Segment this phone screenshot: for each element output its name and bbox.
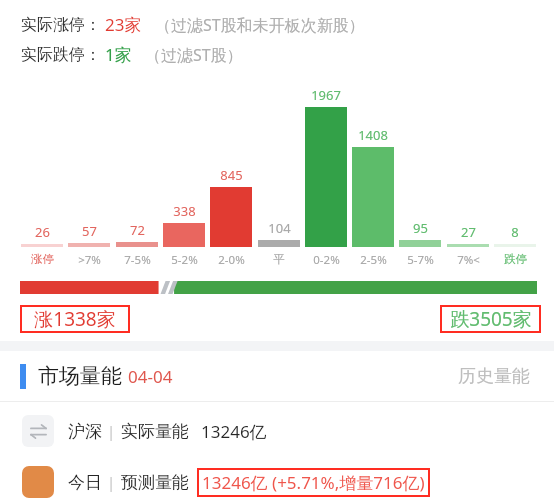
staticText: 5-2% xyxy=(171,252,198,268)
staticText: 平 xyxy=(273,252,285,266)
staticText: （过滤ST股和未开板次新股） xyxy=(155,14,365,36)
staticText: 7-5% xyxy=(124,252,151,268)
staticText: 2-0% xyxy=(218,252,245,268)
staticText: 2-5% xyxy=(360,252,387,268)
staticText: 市场量能 xyxy=(38,363,122,389)
staticText: 跌停 xyxy=(504,252,527,266)
staticText: 1家 xyxy=(105,43,132,66)
staticText: 0-2% xyxy=(313,252,340,268)
staticText: 338 xyxy=(173,202,196,220)
staticText: | xyxy=(107,421,116,441)
staticText: 04-04 xyxy=(128,365,173,388)
staticText: 845 xyxy=(220,166,243,184)
staticText: 实际量能 xyxy=(121,421,189,442)
staticText: 13246亿 (+5.71%,增量716亿) xyxy=(202,471,425,494)
button[interactable]: 历史量能 xyxy=(454,361,534,392)
staticText: 1408 xyxy=(358,126,388,144)
staticText: 实际涨停： xyxy=(21,15,101,35)
staticText: 涨停 xyxy=(31,252,54,266)
staticText: 72 xyxy=(130,221,145,239)
staticText: >7% xyxy=(78,252,101,268)
button[interactable]: 涨1338家 xyxy=(20,305,130,333)
staticText: 涨1338家 xyxy=(34,306,116,332)
staticText: （过滤ST股） xyxy=(145,44,243,66)
staticText: 实际跌停： xyxy=(21,45,101,65)
staticText: 95 xyxy=(413,219,428,237)
other: Exchange xyxy=(22,415,54,447)
staticText: 8 xyxy=(511,223,519,241)
staticText: 1967 xyxy=(311,86,341,104)
staticText: 沪深 xyxy=(68,421,102,442)
staticText: 23家 xyxy=(105,13,142,36)
staticText: 27 xyxy=(461,223,476,241)
staticText: 26 xyxy=(35,223,50,241)
staticText: 5-7% xyxy=(407,252,434,268)
staticText: 13246亿 xyxy=(201,420,267,443)
staticText: 跌3505家 xyxy=(450,306,532,332)
button[interactable]: 跌3505家 xyxy=(440,305,541,333)
staticText: 7%< xyxy=(457,252,480,268)
staticText: 历史量能 xyxy=(458,365,530,388)
staticText: 104 xyxy=(268,219,291,237)
staticText: 57 xyxy=(82,222,97,240)
staticText: | xyxy=(107,472,116,492)
staticText: 预测量能 xyxy=(121,472,189,493)
staticText: 今日 xyxy=(68,472,102,493)
